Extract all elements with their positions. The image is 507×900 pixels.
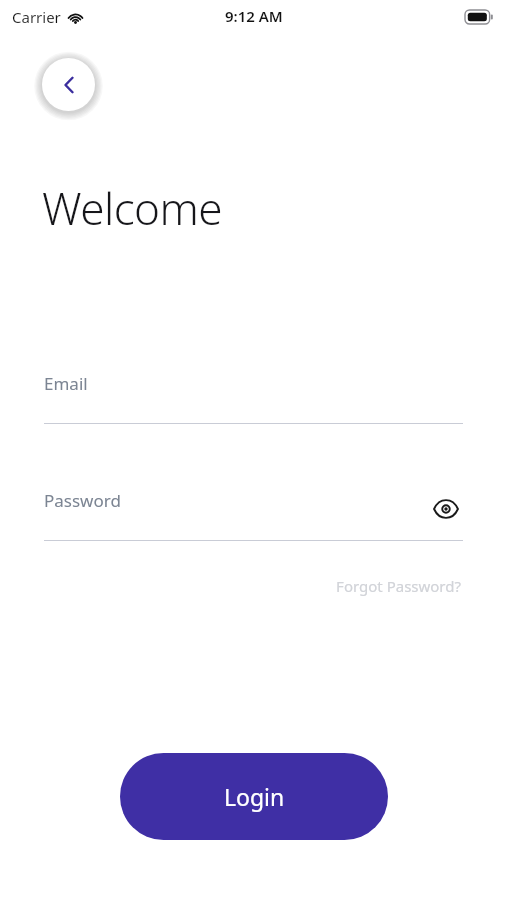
- staticText: Email: [44, 372, 88, 395]
- staticText: Password: [44, 489, 121, 512]
- staticText: 9:12 AM: [225, 6, 283, 26]
- button[interactable]: Back: [42, 58, 95, 111]
- button[interactable]: Email: [44, 372, 463, 424]
- button[interactable]: Login: [120, 753, 388, 840]
- button[interactable]: Forgot Password?: [334, 572, 463, 600]
- staticText: Welcome: [42, 178, 223, 238]
- staticText: Carrier: [12, 7, 61, 27]
- button[interactable]: Password: [44, 489, 463, 541]
- button[interactable]: Show password: [429, 492, 463, 526]
- staticText: Forgot Password?: [336, 576, 461, 596]
- staticText: Login: [224, 781, 285, 812]
